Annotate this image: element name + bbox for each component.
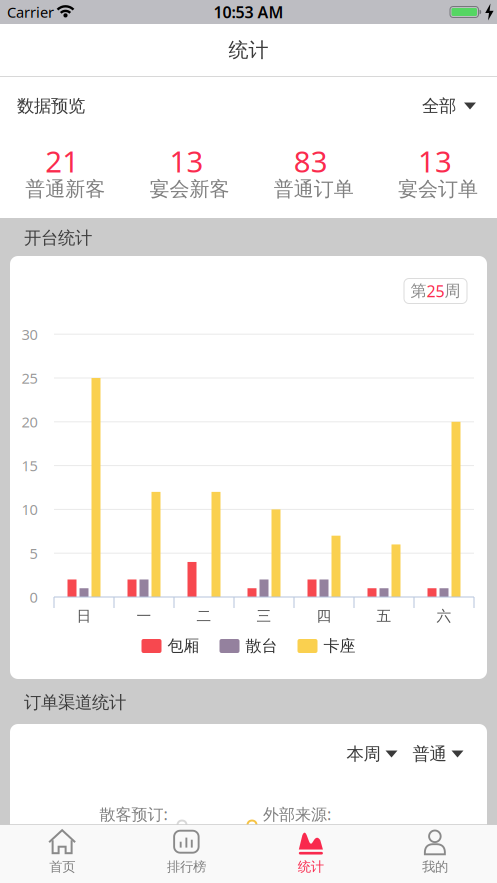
button[interactable]: 我的: [373, 825, 497, 883]
staticText: 开台统计: [24, 227, 92, 249]
staticText: 25: [426, 280, 444, 302]
staticText: 普通: [412, 743, 446, 765]
button[interactable]: 数据预览: [0, 95, 497, 117]
staticText: 宴会新客: [149, 177, 229, 201]
staticText: 10:53 AM: [213, 1, 283, 23]
staticText: 第: [410, 281, 426, 301]
staticText: 包厢: [167, 636, 199, 656]
staticText: 六: [436, 607, 451, 625]
staticText: 排行榜: [167, 859, 206, 875]
staticText: 卡座: [323, 636, 355, 656]
button[interactable]: 统计: [248, 825, 373, 883]
staticText: 散台: [245, 636, 277, 656]
button[interactable]: 首页: [0, 825, 124, 883]
button[interactable]: 排行榜: [124, 825, 248, 883]
staticText: 我的: [422, 859, 448, 875]
staticText: 统计: [228, 38, 268, 62]
staticText: 周: [444, 281, 460, 301]
staticText: 订单渠道统计: [24, 692, 126, 713]
staticText: 日: [76, 607, 91, 625]
staticText: 一: [136, 607, 151, 625]
staticText: 25: [21, 368, 37, 388]
button[interactable]: 本周: [346, 743, 397, 765]
staticText: 四: [316, 607, 331, 625]
staticText: 83: [294, 141, 328, 180]
staticText: 10: [21, 500, 37, 519]
staticText: 外部来源:: [263, 803, 331, 825]
staticText: 五: [376, 607, 391, 625]
staticText: 二: [196, 607, 211, 625]
staticText: 普通新客: [25, 177, 105, 201]
staticText: 15: [21, 456, 37, 475]
staticText: 普通订单: [274, 177, 354, 201]
staticText: 本周: [346, 743, 380, 765]
staticText: 统计: [298, 859, 324, 875]
staticText: 13: [418, 141, 452, 180]
staticText: 三: [256, 607, 271, 625]
staticText: 数据预览: [17, 95, 85, 117]
staticText: Carrier: [7, 2, 54, 22]
staticText: 散客预订:: [99, 803, 167, 825]
staticText: 0: [29, 587, 37, 607]
staticText: 5: [29, 543, 37, 563]
staticText: 首页: [49, 859, 75, 875]
staticText: 21: [45, 141, 79, 180]
staticText: 30: [21, 324, 37, 344]
staticText: 全部: [422, 95, 456, 117]
staticText: 宴会订单: [398, 177, 478, 201]
staticText: 20: [21, 412, 37, 432]
button[interactable]: 第: [404, 278, 467, 303]
button[interactable]: 普通: [412, 743, 463, 765]
staticText: 13: [169, 141, 203, 180]
